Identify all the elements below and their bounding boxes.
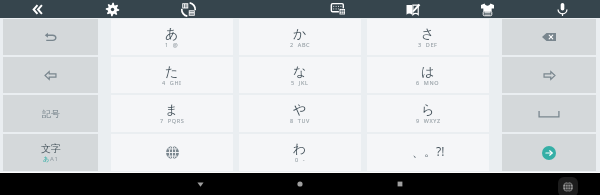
staticText: ら bbox=[421, 101, 435, 117]
staticText: か bbox=[293, 25, 307, 41]
button[interactable]: Backspace bbox=[502, 19, 596, 55]
button[interactable]: Move cursor left bbox=[3, 57, 98, 93]
staticText: 1 @ bbox=[165, 41, 179, 48]
staticText: 5 JKL bbox=[291, 79, 309, 86]
button[interactable]: さ bbox=[367, 19, 489, 55]
button[interactable]: な bbox=[239, 57, 361, 93]
button[interactable]: ら bbox=[367, 95, 489, 132]
button[interactable]: わ bbox=[239, 134, 361, 171]
staticText: 文字 bbox=[41, 142, 61, 155]
button[interactable]: Theme bbox=[478, 0, 496, 18]
staticText: わ bbox=[293, 140, 307, 156]
staticText: な bbox=[293, 63, 307, 79]
staticText: 8 TUV bbox=[290, 117, 310, 124]
button[interactable]: Undo bbox=[3, 19, 98, 55]
staticText: は bbox=[421, 63, 435, 79]
button[interactable]: は bbox=[367, 57, 489, 93]
staticText: 、。?! bbox=[412, 143, 445, 159]
button[interactable]: Home bbox=[280, 173, 320, 195]
staticText: 3 DEF bbox=[418, 41, 438, 48]
staticText: や bbox=[293, 101, 307, 117]
staticText: 記号 bbox=[42, 108, 60, 119]
button[interactable]: た bbox=[111, 57, 233, 93]
staticText: あ bbox=[43, 155, 50, 163]
staticText: あ bbox=[165, 25, 179, 41]
staticText: 0 - bbox=[295, 156, 306, 163]
staticText: 9 WXYZ bbox=[416, 117, 441, 124]
button[interactable]: 、。?! bbox=[367, 134, 489, 171]
staticText: 2 ABC bbox=[290, 41, 311, 48]
button[interactable]: Settings bbox=[103, 0, 121, 18]
button[interactable]: Recent apps bbox=[380, 173, 420, 195]
staticText: A1 bbox=[50, 155, 59, 163]
button[interactable]: や bbox=[239, 95, 361, 132]
button[interactable]: Change input language bbox=[111, 134, 233, 171]
staticText: さ bbox=[421, 25, 435, 41]
button[interactable]: あ bbox=[111, 19, 233, 55]
button[interactable]: Keyboard layout bbox=[329, 0, 347, 18]
button[interactable]: Enter bbox=[502, 134, 596, 171]
button[interactable]: か bbox=[239, 19, 361, 55]
button[interactable]: Move cursor right bbox=[502, 57, 596, 93]
button[interactable]: Collapse keyboard bbox=[28, 0, 46, 18]
button[interactable]: Voice input bbox=[553, 0, 571, 18]
button[interactable]: Space bbox=[502, 95, 596, 132]
staticText: 4 GHI bbox=[162, 79, 182, 86]
button[interactable]: Switch keyboard bbox=[558, 177, 578, 195]
button[interactable]: Back bbox=[180, 173, 220, 195]
staticText: 7 PQRS bbox=[160, 117, 185, 124]
staticText: ま bbox=[165, 101, 179, 117]
button[interactable]: Switch character type bbox=[3, 134, 98, 171]
staticText: 6 MNO bbox=[416, 79, 440, 86]
button[interactable]: Symbols bbox=[3, 95, 98, 132]
button[interactable]: ま bbox=[111, 95, 233, 132]
button[interactable]: Phone input bbox=[179, 0, 197, 18]
button[interactable]: Dictionary bbox=[403, 0, 421, 18]
staticText: た bbox=[165, 63, 179, 79]
